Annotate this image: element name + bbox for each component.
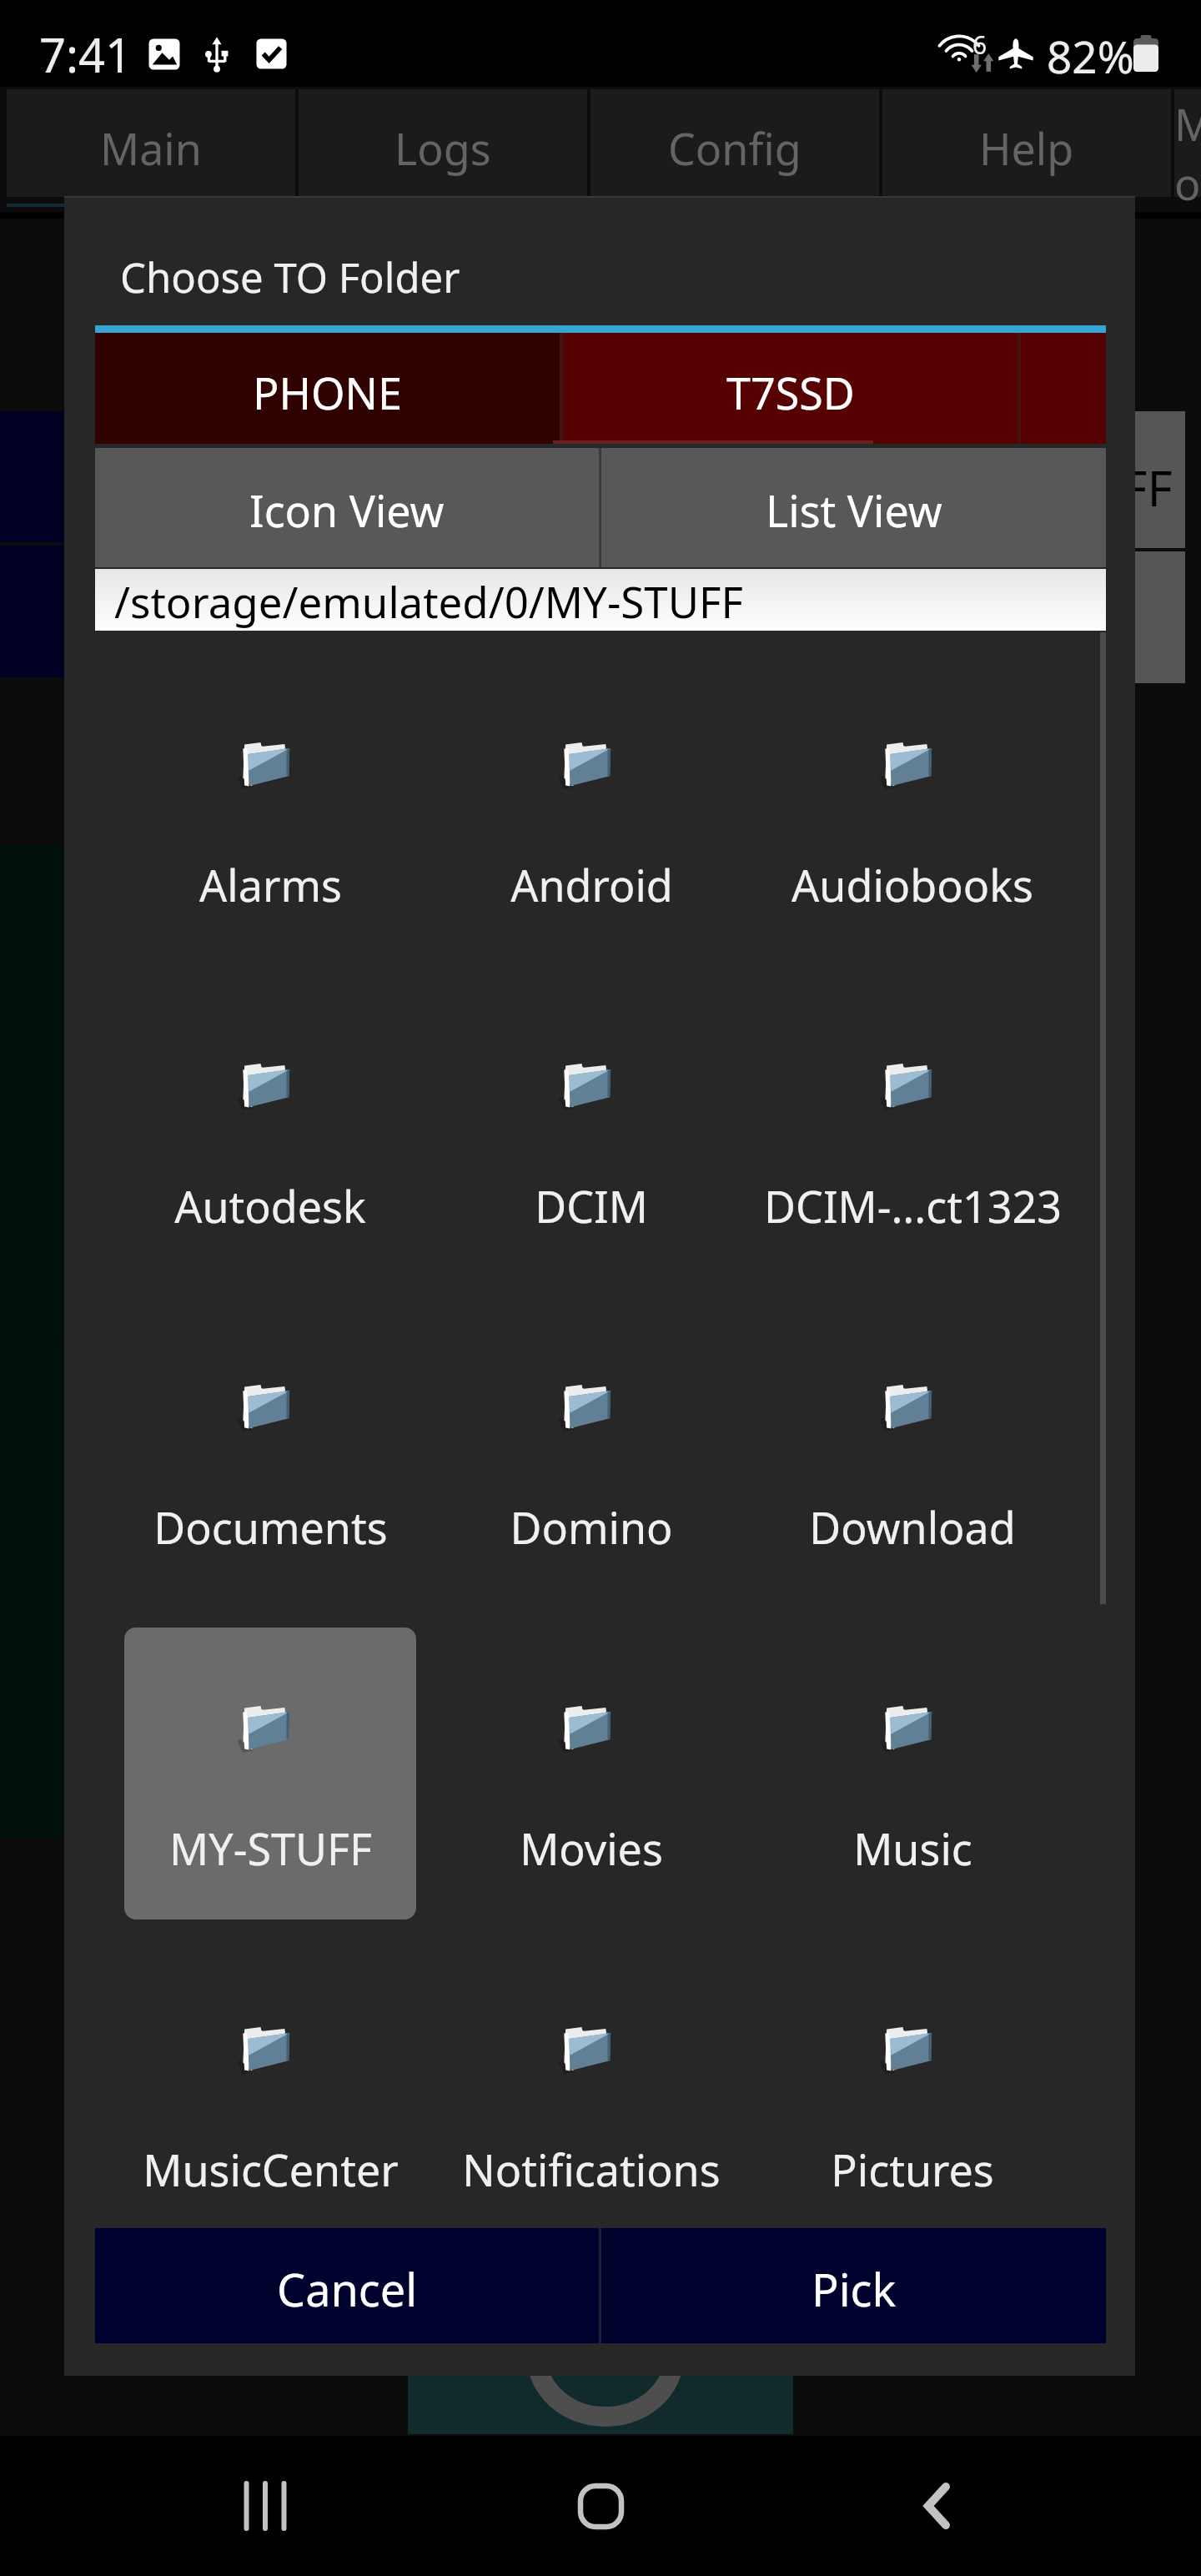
button[interactable]: MusicCenter xyxy=(124,1949,416,2241)
staticText: Pictures xyxy=(831,2140,994,2199)
button[interactable]: Notifications xyxy=(445,1949,737,2241)
staticText: Pick xyxy=(812,2258,897,2320)
button[interactable]: Autodesk xyxy=(124,985,416,1277)
staticText: Help xyxy=(979,118,1074,178)
staticText: Main xyxy=(100,118,202,178)
staticText: DCIM xyxy=(535,1176,648,1235)
button[interactable]: DCIM xyxy=(445,985,737,1277)
button[interactable]: List View xyxy=(601,448,1106,567)
button[interactable]: Main xyxy=(7,89,295,197)
button[interactable]: T7SSD xyxy=(563,333,1018,444)
staticText: More xyxy=(1174,94,1201,202)
staticText: List View xyxy=(766,480,942,540)
staticText: 6 xyxy=(972,28,987,62)
button[interactable]: Audiobooks xyxy=(766,664,1058,956)
staticText: Music xyxy=(853,1819,972,1878)
staticText: Movies xyxy=(520,1819,663,1878)
staticText: OFF xyxy=(1084,455,1173,521)
staticText: T7SSD xyxy=(726,363,855,422)
button[interactable]: Pick xyxy=(601,2228,1106,2343)
button[interactable]: Config xyxy=(590,89,879,197)
button[interactable]: Icon View xyxy=(95,448,599,567)
button[interactable]: Movies xyxy=(445,1628,737,1919)
button[interactable]: Download xyxy=(766,1306,1058,1598)
button[interactable]: PHONE xyxy=(95,333,560,444)
button[interactable]: Back xyxy=(878,2448,995,2564)
staticText: Autodesk xyxy=(174,1176,366,1235)
staticText: Choose TO Folder xyxy=(120,249,460,305)
staticText: 82% xyxy=(1047,26,1134,86)
button[interactable]: Pictures xyxy=(766,1949,1058,2241)
button[interactable]: Music xyxy=(766,1628,1058,1919)
staticText: MusicCenter xyxy=(143,2140,399,2199)
button[interactable]: Logs xyxy=(299,89,587,197)
staticText: DCIM-...ct1323 xyxy=(764,1176,1062,1235)
staticText: Download xyxy=(809,1497,1016,1557)
staticText: Documents xyxy=(153,1497,388,1557)
button[interactable]: Android xyxy=(445,664,737,956)
button[interactable]: Domino xyxy=(445,1306,737,1598)
staticText: Notifications xyxy=(462,2140,721,2199)
staticText: Icon View xyxy=(249,480,445,540)
staticText: PHONE xyxy=(253,363,403,422)
button[interactable]: DCIM-...ct1323 xyxy=(766,985,1058,1277)
button[interactable]: MY-STUFF xyxy=(124,1628,416,1919)
staticText: 7:41 xyxy=(39,23,133,86)
button[interactable]: Help xyxy=(882,89,1171,197)
button[interactable]: Home xyxy=(542,2448,659,2564)
staticText: Logs xyxy=(394,118,491,178)
button[interactable]: Recents xyxy=(207,2448,324,2564)
button[interactable]: Cancel xyxy=(95,2228,599,2343)
staticText: Domino xyxy=(510,1497,673,1557)
staticText: Cancel xyxy=(277,2258,418,2320)
staticText: Android xyxy=(510,855,673,914)
button[interactable]: Documents xyxy=(124,1306,416,1598)
staticText: /storage/emulated/0/MY-STUFF xyxy=(114,572,743,630)
staticText: Alarms xyxy=(199,855,342,914)
staticText: MY-STUFF xyxy=(169,1819,372,1878)
staticText: Audiobooks xyxy=(791,855,1033,914)
button[interactable]: More xyxy=(1174,89,1201,197)
staticText: Config xyxy=(668,118,802,178)
button[interactable]: Alarms xyxy=(124,664,416,956)
